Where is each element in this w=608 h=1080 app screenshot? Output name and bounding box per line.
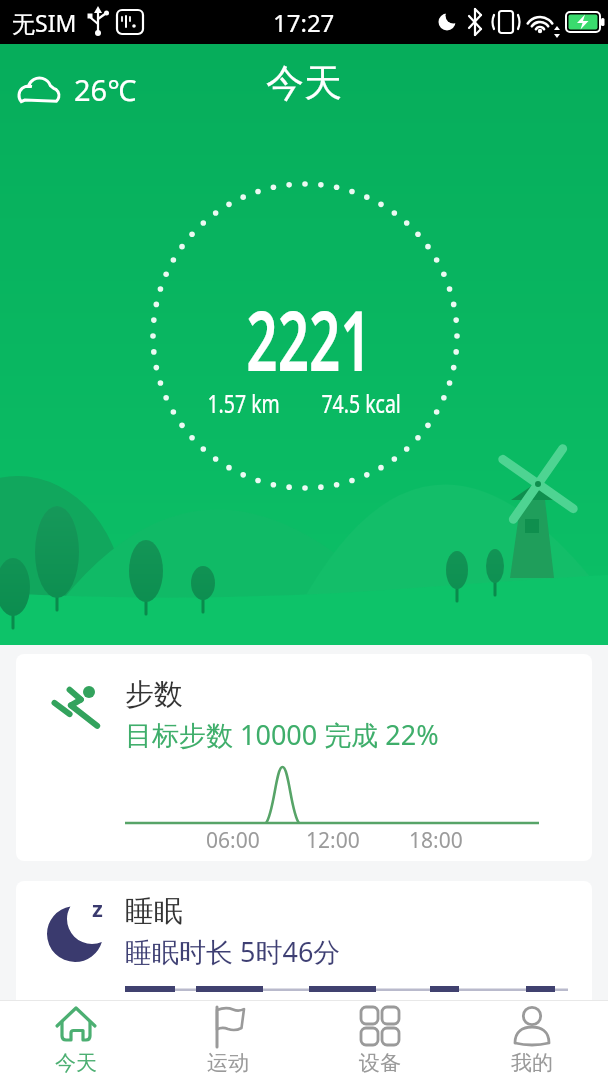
staticText: 无SIM — [12, 7, 77, 38]
staticText: 我的 — [511, 1050, 553, 1076]
staticText: 17:27 — [273, 6, 335, 39]
staticText: 1.57 km — [207, 385, 280, 420]
button[interactable]: 26℃ — [16, 70, 137, 109]
staticText: 06:00 — [206, 826, 260, 855]
staticText: 26℃ — [74, 70, 137, 109]
staticText: z — [92, 893, 103, 923]
staticText: 设备 — [359, 1050, 401, 1076]
staticText: 今天 — [55, 1050, 97, 1076]
button[interactable]: z — [16, 881, 592, 1000]
staticText: 2221 — [246, 282, 372, 395]
staticText: 18:00 — [409, 826, 463, 855]
staticText: 运动 — [207, 1050, 249, 1076]
staticText: 今天 — [266, 59, 342, 107]
staticText: 目标步数 10000 完成 22% — [125, 716, 439, 753]
staticText: 睡眠 — [125, 893, 183, 930]
staticText: 12:00 — [306, 826, 360, 855]
button[interactable]: 我的 — [456, 1001, 608, 1080]
staticText: 睡眠时长 5时46分 — [125, 933, 341, 970]
staticText: 74.5 kcal — [321, 385, 402, 420]
staticText: 步数 — [125, 676, 183, 713]
button[interactable]: 今天 — [0, 1001, 152, 1080]
button[interactable]: 运动 — [152, 1001, 304, 1080]
button[interactable]: 设备 — [304, 1001, 456, 1080]
button[interactable]: 步数 — [16, 654, 592, 861]
